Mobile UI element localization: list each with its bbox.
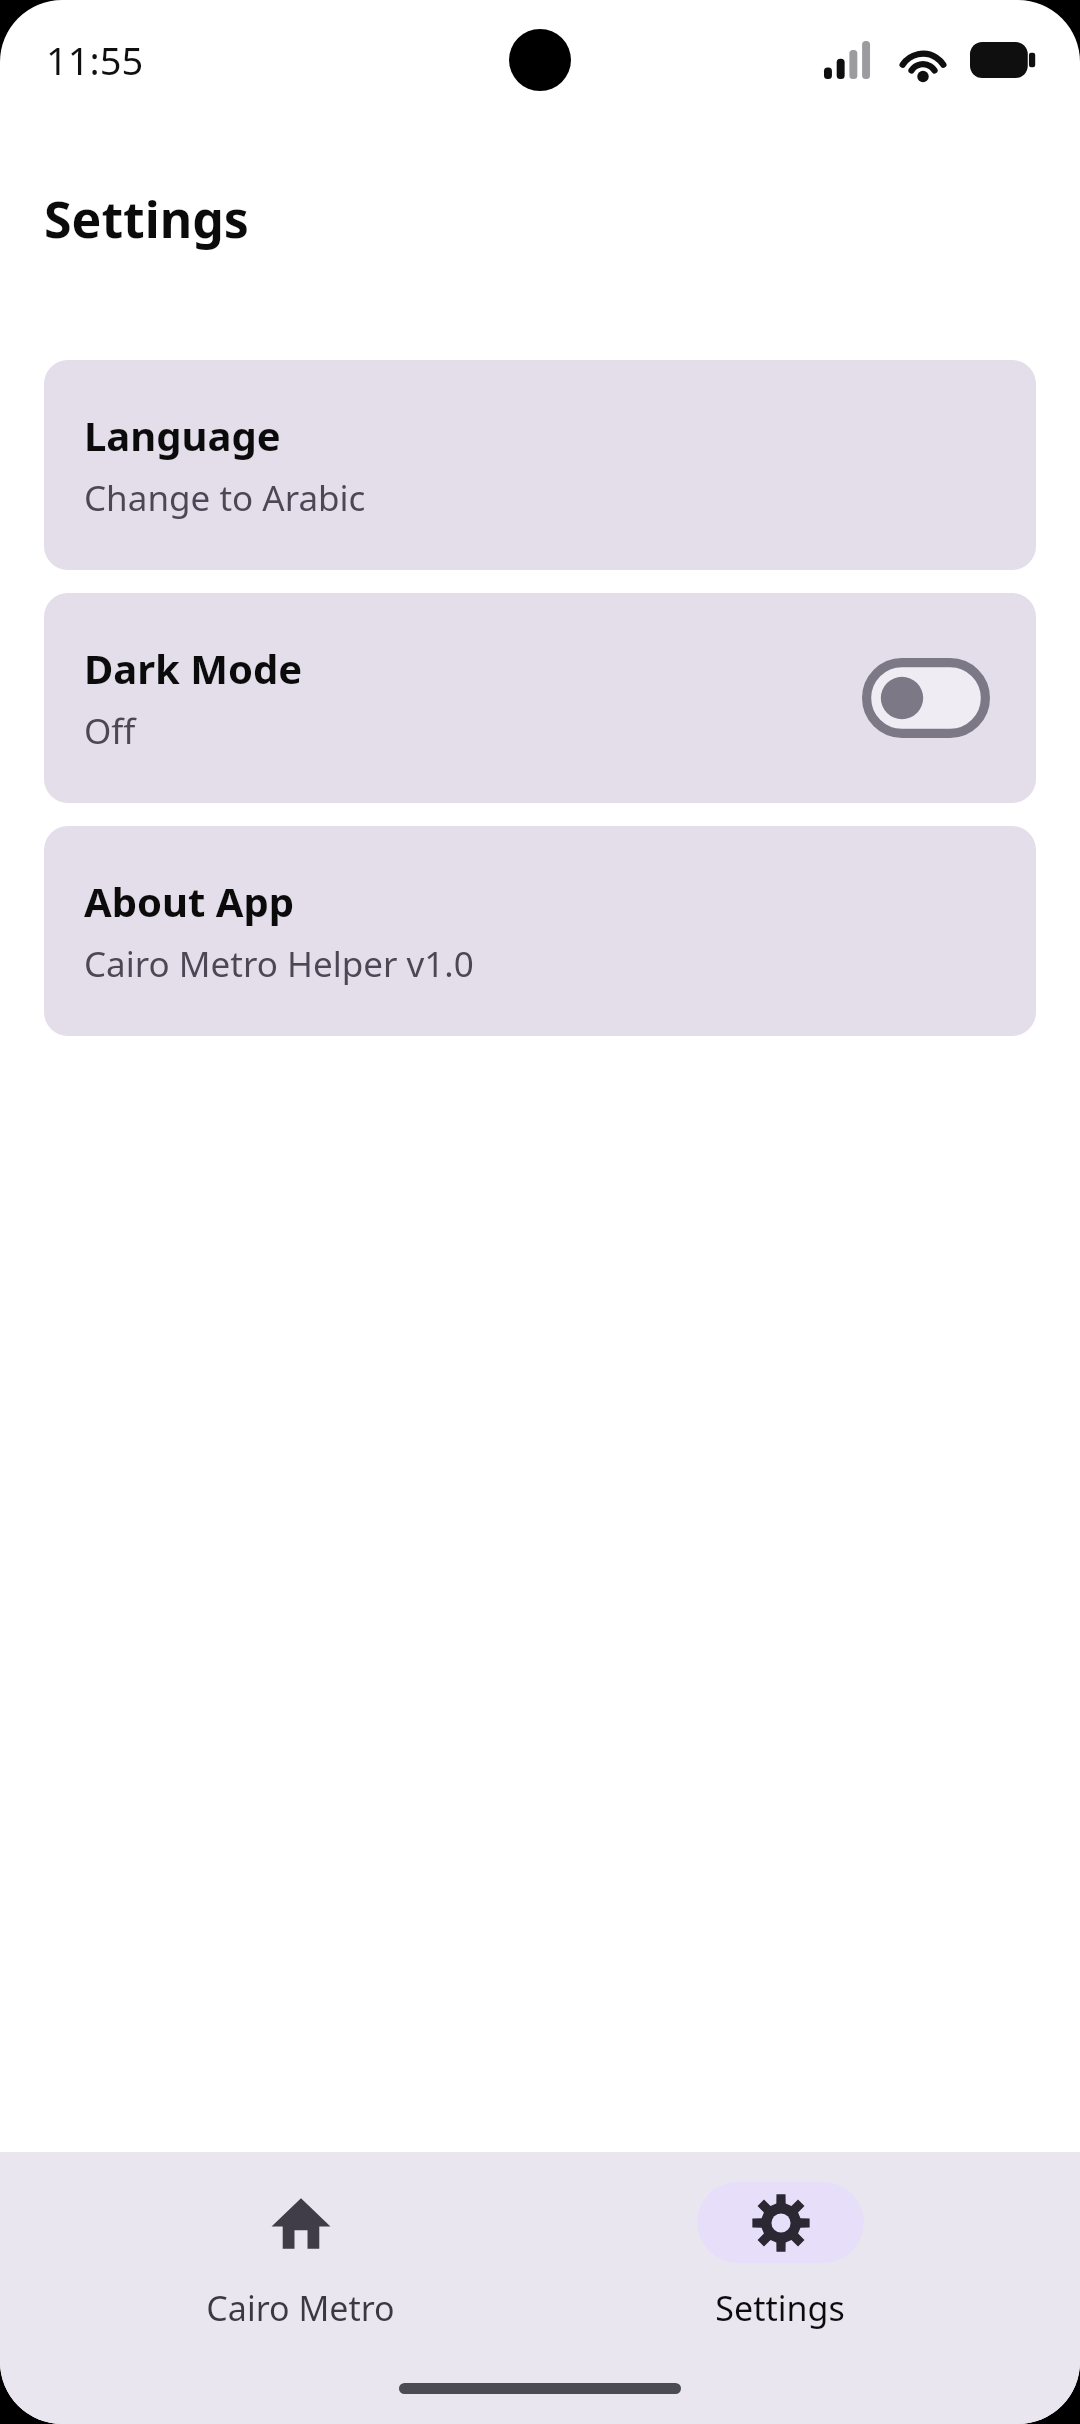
staticText: 11:55 xyxy=(46,34,144,86)
other: Settings xyxy=(752,2194,810,2252)
button[interactable]: Settings xyxy=(600,2182,960,2331)
staticText: Cairo Metro Helper v1.0 xyxy=(84,940,474,988)
button[interactable]: Toggle dark mode xyxy=(862,658,990,738)
staticText: Cairo Metro xyxy=(206,2285,395,2331)
staticText: Dark Mode xyxy=(84,641,303,695)
staticText: Language xyxy=(84,408,281,462)
button[interactable]: Dark Mode xyxy=(44,593,1036,803)
button[interactable]: Cairo Metro home xyxy=(120,2182,480,2331)
staticText: Off xyxy=(84,707,136,755)
staticText: About App xyxy=(84,874,294,928)
staticText: Change to Arabic xyxy=(84,474,366,522)
button[interactable]: Language xyxy=(44,360,1036,570)
other: Cairo Metro home xyxy=(270,2192,332,2254)
button[interactable]: About App xyxy=(44,826,1036,1036)
staticText: Settings xyxy=(715,2285,845,2331)
staticText: Settings xyxy=(44,185,249,253)
